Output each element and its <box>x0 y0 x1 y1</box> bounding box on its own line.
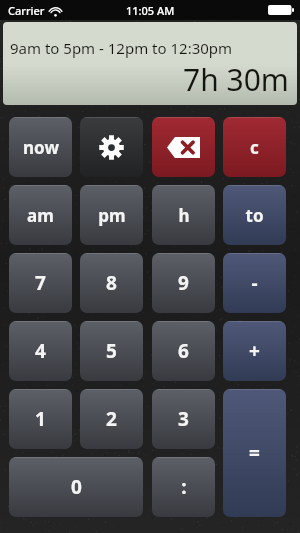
staticText: = <box>249 440 260 466</box>
staticText: 9 <box>178 270 189 296</box>
staticText: 0 <box>71 474 82 500</box>
staticText: 11:05 AM <box>126 3 175 18</box>
staticText: 8 <box>106 270 117 296</box>
staticText: pm <box>98 204 126 227</box>
button[interactable]: + <box>223 321 286 381</box>
button[interactable]: 8 <box>80 253 143 313</box>
button[interactable]: 4 <box>9 321 72 381</box>
button[interactable]: now <box>9 117 72 177</box>
staticText: 7h 30m <box>183 59 289 100</box>
staticText: + <box>249 338 260 364</box>
staticText: 2 <box>106 406 117 432</box>
button[interactable]: 0 <box>9 457 143 517</box>
staticText: 7 <box>35 270 46 296</box>
button[interactable]: 1 <box>9 389 72 449</box>
staticText: 5 <box>106 338 117 364</box>
button[interactable]: = <box>223 389 286 517</box>
button[interactable]: 9 <box>152 253 215 313</box>
staticText: - <box>251 270 258 296</box>
button[interactable]: 9am to 5pm - 12pm to 12:30pm <box>3 22 297 105</box>
button[interactable]: c <box>223 117 286 177</box>
button[interactable]: Settings <box>80 117 143 177</box>
button[interactable]: : <box>152 457 215 517</box>
button[interactable]: Backspace <box>152 117 215 177</box>
staticText: 3 <box>178 406 189 432</box>
button[interactable]: pm <box>80 185 143 245</box>
staticText: 4 <box>35 338 46 364</box>
staticText: now <box>23 136 59 159</box>
staticText: c <box>250 136 259 159</box>
button[interactable]: to <box>223 185 286 245</box>
button[interactable]: h <box>152 185 215 245</box>
staticText: 1 <box>35 406 46 432</box>
button[interactable]: 5 <box>80 321 143 381</box>
button[interactable]: 2 <box>80 389 143 449</box>
staticText: 9am to 5pm - 12pm to 12:30pm <box>10 38 233 58</box>
staticText: : <box>181 474 187 500</box>
staticText: Carrier <box>8 3 45 18</box>
button[interactable]: 3 <box>152 389 215 449</box>
staticText: h <box>178 204 190 227</box>
staticText: to <box>245 204 264 227</box>
staticText: 6 <box>178 338 189 364</box>
button[interactable]: 7 <box>9 253 72 313</box>
button[interactable]: - <box>223 253 286 313</box>
button[interactable]: am <box>9 185 72 245</box>
staticText: am <box>27 204 54 227</box>
button[interactable]: 6 <box>152 321 215 381</box>
